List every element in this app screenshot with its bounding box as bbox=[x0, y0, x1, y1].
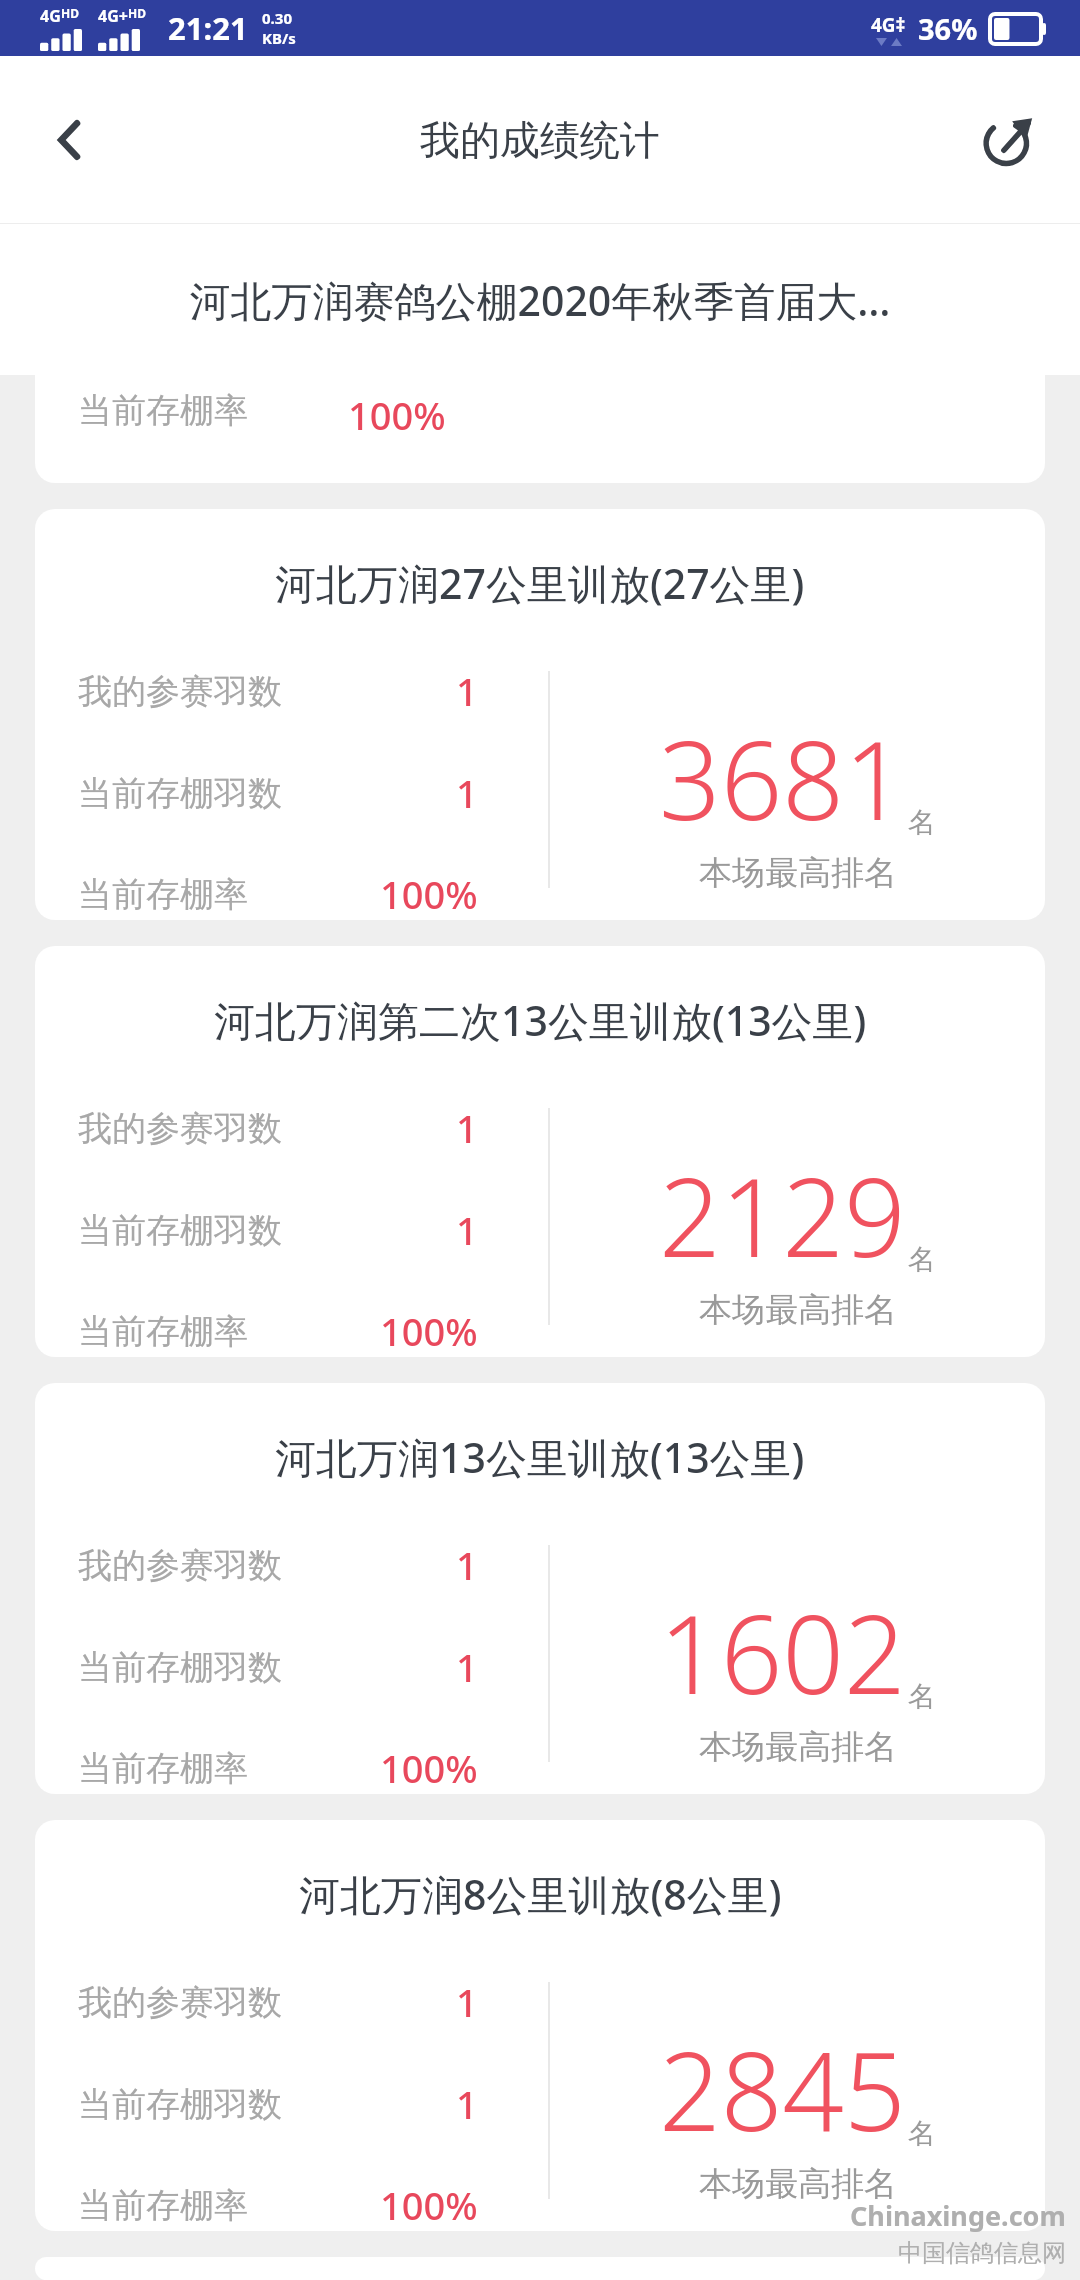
staticText: 当前存棚率 bbox=[78, 1747, 248, 1790]
staticText: 河北万润赛鸽公棚2020年秋季首届大… bbox=[189, 272, 891, 328]
staticText: 1 bbox=[456, 1102, 478, 1154]
staticText: Chinaxinge.com bbox=[850, 2197, 1066, 2234]
staticText: 我的成绩统计 bbox=[420, 115, 660, 165]
staticText: 100% bbox=[380, 1742, 478, 1794]
staticText: 4G+ bbox=[98, 5, 128, 27]
staticText: 当前存棚率 bbox=[78, 873, 248, 916]
staticText: 我的参赛羽数 bbox=[78, 670, 282, 713]
staticText: 36% bbox=[918, 9, 978, 48]
staticText: 1602 bbox=[659, 1579, 906, 1726]
staticText: HD bbox=[128, 5, 146, 21]
staticText: 河北万润第二次13公里训放(13公里) bbox=[214, 992, 867, 1048]
staticText: 1 bbox=[456, 767, 478, 819]
staticText: 名 bbox=[908, 1242, 936, 1277]
staticText: 100% bbox=[348, 389, 446, 441]
button[interactable]: 河北万润第二次13公里训放(13公里) bbox=[35, 946, 1045, 1357]
staticText: 我的参赛羽数 bbox=[78, 1544, 282, 1587]
staticText: 1 bbox=[456, 2078, 478, 2130]
staticText: 100% bbox=[380, 2179, 478, 2231]
staticText: 1 bbox=[456, 1641, 478, 1693]
button[interactable]: 河北万润13公里训放(13公里) bbox=[35, 1383, 1045, 1794]
staticText: 中国信鸽信息网 bbox=[898, 2238, 1066, 2268]
button[interactable]: Share bbox=[958, 90, 1058, 190]
staticText: 名 bbox=[908, 805, 936, 840]
staticText: 0.30 bbox=[262, 8, 292, 28]
staticText: 河北万润27公里训放(27公里) bbox=[275, 555, 805, 611]
staticText: 河北万润8公里训放(8公里) bbox=[299, 1866, 782, 1922]
staticText: 当前存棚羽数 bbox=[78, 772, 282, 815]
staticText: 本场最高排名 bbox=[699, 2163, 897, 2205]
staticText: HD bbox=[61, 5, 79, 21]
staticText: 1 bbox=[456, 1204, 478, 1256]
button[interactable]: 当前存棚率 bbox=[35, 224, 1045, 483]
staticText: 名 bbox=[908, 1679, 936, 1714]
staticText: 我的参赛羽数 bbox=[78, 1107, 282, 1150]
staticText: 当前存棚率 bbox=[78, 2184, 248, 2227]
staticText: 当前存棚率 bbox=[78, 389, 248, 432]
staticText: 100% bbox=[380, 1305, 478, 1357]
staticText: 4G‡ bbox=[871, 12, 906, 38]
staticText: 我的参赛羽数 bbox=[78, 1981, 282, 2024]
staticText: 本场最高排名 bbox=[699, 852, 897, 894]
button[interactable]: 河北万润8公里训放(8公里) bbox=[35, 1820, 1045, 2231]
button[interactable]: 河北万润27公里训放(27公里) bbox=[35, 509, 1045, 920]
staticText: 2845 bbox=[659, 2016, 906, 2163]
button[interactable]: 河北万润赛鸽公棚2020年秋季首届大… bbox=[0, 224, 1080, 375]
staticText: 21:21 bbox=[168, 7, 248, 49]
staticText: 2129 bbox=[659, 1142, 906, 1289]
staticText: 100% bbox=[380, 868, 478, 920]
staticText: 1 bbox=[456, 665, 478, 717]
staticText: 名 bbox=[908, 2116, 936, 2151]
staticText: 本场最高排名 bbox=[699, 1289, 897, 1331]
staticText: 本场最高排名 bbox=[699, 1726, 897, 1768]
staticText: 4G bbox=[40, 5, 61, 27]
staticText: 当前存棚羽数 bbox=[78, 2083, 282, 2126]
staticText: 当前存棚羽数 bbox=[78, 1646, 282, 1689]
staticText: 河北万润13公里训放(13公里) bbox=[275, 1429, 805, 1485]
button[interactable]: Back bbox=[18, 88, 122, 192]
staticText: 当前存棚羽数 bbox=[78, 1209, 282, 1252]
staticText: 当前存棚率 bbox=[78, 1310, 248, 1353]
staticText: 1 bbox=[456, 1976, 478, 2028]
staticText: KB/s bbox=[262, 28, 296, 48]
staticText: 1 bbox=[456, 1539, 478, 1591]
button[interactable]: 河北万润第二次5公里训放(5公里) bbox=[35, 2257, 1045, 2280]
staticText: 3681 bbox=[659, 705, 906, 852]
